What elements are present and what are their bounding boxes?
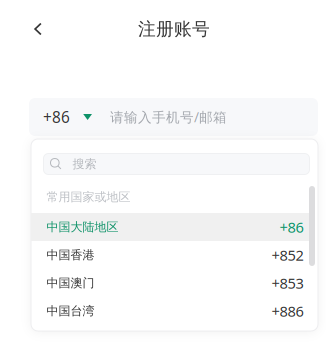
staticText: +86 — [43, 107, 70, 127]
staticText: 请输入手机号/邮箱 — [110, 108, 227, 126]
staticText: +86 — [279, 217, 303, 237]
button[interactable]: 选择国家或地区区号 — [29, 98, 108, 136]
staticText: 搜索 — [72, 156, 96, 171]
button[interactable]: 中国澳门 — [31, 269, 318, 297]
staticText: +852 — [271, 245, 303, 265]
staticText: 中国大陆地区 — [46, 219, 118, 234]
button[interactable]: 返回 — [21, 7, 55, 51]
button[interactable]: 中国台湾 — [31, 297, 318, 325]
staticText: 中国香港 — [46, 247, 94, 262]
staticText: 常用国家或地区 — [46, 189, 130, 204]
staticText: +853 — [271, 273, 303, 293]
staticText: +886 — [271, 301, 303, 321]
button[interactable]: 中国香港 — [31, 241, 318, 269]
button[interactable]: 中国大陆地区 — [31, 213, 318, 241]
staticText: 中国台湾 — [46, 303, 94, 318]
staticText: 注册账号 — [138, 18, 210, 40]
staticText: 中国澳门 — [46, 275, 94, 290]
